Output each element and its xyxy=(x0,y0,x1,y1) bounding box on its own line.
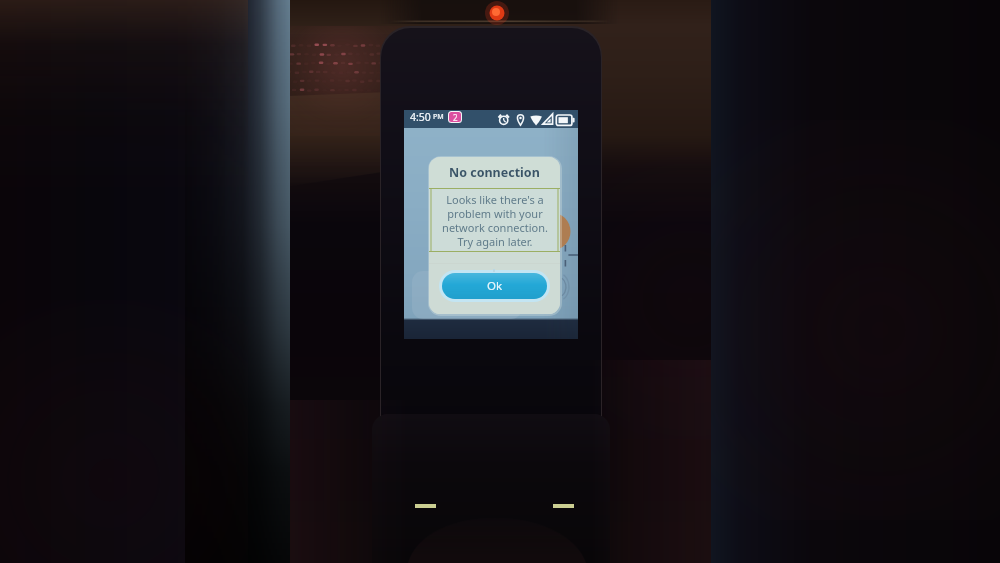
button[interactable]: Ok xyxy=(442,273,547,299)
staticText: 2 xyxy=(453,112,458,122)
staticText: 4:50 xyxy=(410,110,431,124)
staticText: Looks like there's a problem with your n… xyxy=(442,192,548,249)
staticText: PM xyxy=(433,112,444,122)
staticText: No connection xyxy=(449,164,540,181)
staticText: Ok xyxy=(487,278,503,294)
